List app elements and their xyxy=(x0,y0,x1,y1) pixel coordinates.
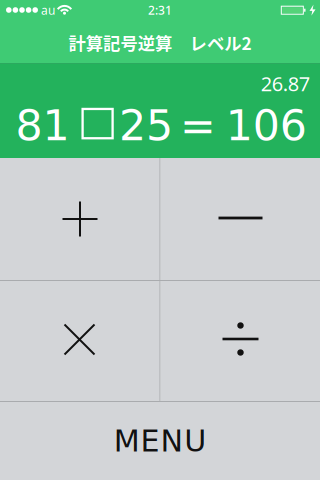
staticText: 2:31 xyxy=(148,2,172,18)
staticText: 81 xyxy=(16,101,70,150)
button[interactable]: Minus xyxy=(160,158,320,280)
staticText: = xyxy=(180,101,216,150)
staticText: 106 xyxy=(226,101,307,150)
staticText: au xyxy=(41,2,55,18)
button[interactable]: Plus xyxy=(0,158,159,280)
button[interactable]: Divide xyxy=(160,281,320,401)
staticText: 25 xyxy=(119,101,173,150)
button[interactable]: MENU xyxy=(0,402,320,480)
staticText: 計算記号逆算 レベル2 xyxy=(68,30,251,55)
button[interactable]: Multiply xyxy=(0,281,159,401)
staticText: MENU xyxy=(114,423,206,459)
staticText: 26.87 xyxy=(261,70,310,97)
